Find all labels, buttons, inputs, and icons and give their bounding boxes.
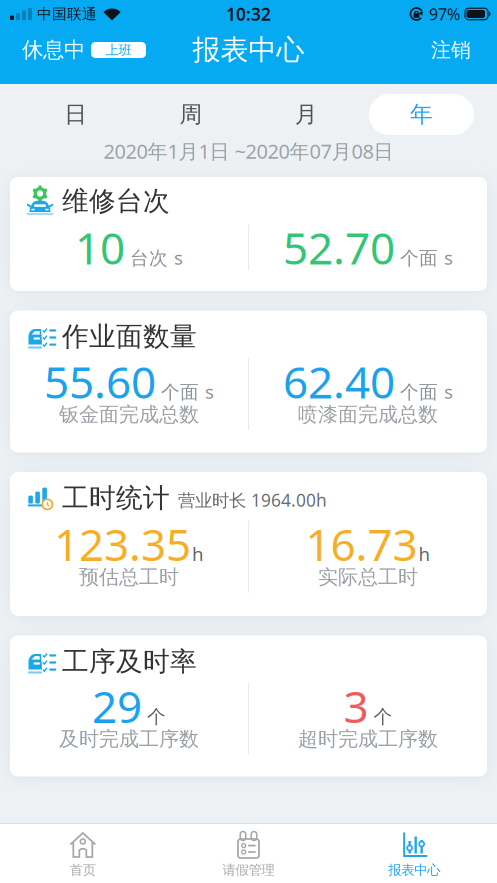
- staticText: 个面 s: [400, 379, 453, 404]
- staticText: 个: [147, 705, 166, 728]
- staticText: 作业面数量: [62, 320, 197, 353]
- staticText: 首页: [70, 862, 96, 878]
- staticText: 55.60: [44, 352, 156, 411]
- staticText: 台次 s: [130, 245, 183, 270]
- staticText: 休息中: [22, 37, 85, 63]
- staticText: 及时完成工序数: [59, 727, 199, 751]
- staticText: 月: [295, 101, 318, 128]
- staticText: 实际总工时: [318, 565, 418, 589]
- staticText: 报表中心: [388, 862, 440, 878]
- staticText: 个: [373, 705, 392, 728]
- staticText: 请假管理: [222, 862, 274, 878]
- staticText: 97%: [429, 3, 460, 25]
- staticText: 营业时长 1964.00h: [178, 488, 327, 511]
- staticText: 29: [92, 677, 142, 735]
- staticText: 年: [410, 101, 433, 128]
- staticText: 10:32: [226, 2, 271, 25]
- staticText: 钣金面完成总数: [59, 402, 199, 427]
- staticText: 个面 s: [161, 379, 214, 404]
- staticText: 喷漆面完成总数: [298, 402, 438, 427]
- staticText: 工时统计: [62, 482, 170, 514]
- staticText: 2020年1月1日 ~2020年07月08日: [103, 138, 393, 164]
- staticText: h: [418, 541, 430, 566]
- staticText: 3: [343, 677, 368, 735]
- staticText: 中国联通: [37, 5, 97, 23]
- staticText: 16.73: [305, 515, 417, 573]
- staticText: 维修台次: [62, 185, 170, 217]
- staticText: 周: [179, 101, 202, 128]
- staticText: 注销: [431, 38, 471, 62]
- staticText: 报表中心: [192, 33, 304, 67]
- staticText: 62.40: [283, 352, 395, 411]
- staticText: 个面 s: [400, 245, 453, 270]
- staticText: 日: [64, 101, 87, 128]
- staticText: h: [192, 541, 204, 566]
- staticText: 超时完成工序数: [298, 727, 438, 751]
- staticText: 工序及时率: [62, 645, 197, 678]
- staticText: 预估总工时: [79, 565, 179, 589]
- staticText: 52.70: [283, 218, 395, 277]
- staticText: 上班: [105, 42, 131, 58]
- staticText: 10: [75, 218, 125, 277]
- staticText: 123.35: [54, 515, 191, 573]
